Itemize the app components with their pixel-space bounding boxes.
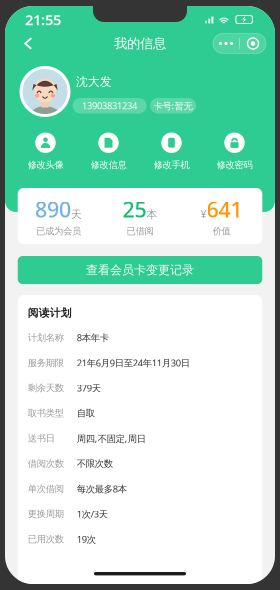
- button[interactable]: Close: [240, 33, 266, 53]
- staticText: 21:55: [25, 10, 61, 29]
- button[interactable]: Back: [13, 30, 43, 56]
- staticText: ¥: [200, 207, 206, 221]
- staticText: 查看会员卡变更记录: [86, 263, 194, 277]
- staticText: 价值: [212, 225, 230, 237]
- staticText: 取书类型: [28, 407, 64, 419]
- staticText: 剩余天数: [28, 382, 64, 394]
- staticText: 计划名称: [28, 332, 64, 343]
- staticText: 641: [206, 195, 242, 223]
- staticText: 天: [71, 208, 82, 221]
- staticText: 自取: [77, 407, 95, 419]
- staticText: 不限次数: [77, 458, 113, 469]
- staticText: 已用次数: [28, 533, 64, 545]
- staticText: 本: [146, 208, 157, 221]
- staticText: 借阅次数: [28, 458, 64, 469]
- staticText: 阅读计划: [28, 306, 72, 319]
- staticText: 更换周期: [28, 508, 64, 520]
- button[interactable]: 修改信息: [77, 132, 140, 170]
- staticText: 379天: [77, 382, 101, 394]
- staticText: 修改密码: [216, 159, 252, 170]
- staticText: 修改手机: [153, 159, 189, 170]
- staticText: 服务期限: [28, 357, 64, 369]
- staticText: 每次最多8本: [77, 483, 127, 495]
- button[interactable]: More: [213, 33, 239, 53]
- staticText: 21年6月9日至24年11月30日: [77, 357, 190, 369]
- staticText: 单次借阅: [28, 483, 64, 495]
- staticText: 1次/3天: [77, 508, 108, 520]
- staticText: 卡号:暂无: [154, 100, 193, 112]
- staticText: 19次: [77, 533, 96, 545]
- staticText: 13903831234: [82, 100, 137, 112]
- button[interactable]: 修改头像: [14, 132, 77, 170]
- staticText: 25: [122, 195, 146, 223]
- staticText: 8本年卡: [77, 331, 109, 344]
- staticText: 沈大发: [76, 74, 112, 89]
- button[interactable]: 查看会员卡变更记录: [18, 256, 262, 284]
- staticText: 周四,不固定,周日: [77, 432, 146, 445]
- staticText: 已借阅: [126, 225, 153, 237]
- button[interactable]: 修改手机: [140, 132, 203, 170]
- button[interactable]: 修改密码: [203, 132, 266, 170]
- staticText: 890: [35, 195, 71, 223]
- staticText: 已成为会员: [36, 225, 81, 237]
- staticText: 修改信息: [90, 159, 126, 170]
- staticText: 修改头像: [27, 159, 63, 170]
- staticText: 送书日: [28, 433, 55, 444]
- staticText: 我的信息: [114, 35, 166, 52]
